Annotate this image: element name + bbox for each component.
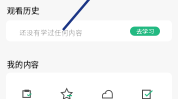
staticText: 去学习 — [136, 27, 154, 36]
staticText: 还没有学过任何内容 — [19, 28, 82, 37]
button[interactable]: 去学习 — [130, 27, 160, 36]
button[interactable]: 做题 — [141, 88, 153, 99]
staticText: 我的内容 — [7, 58, 39, 70]
button[interactable]: 下载 — [101, 88, 113, 99]
button[interactable]: 笔记 — [21, 87, 33, 99]
button[interactable]: 收藏 — [61, 88, 73, 99]
staticText: 观看历史 — [7, 4, 39, 16]
